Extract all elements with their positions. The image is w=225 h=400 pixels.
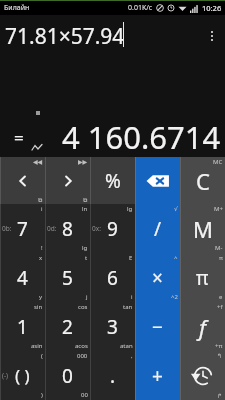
staticText: lg	[82, 244, 88, 252]
staticText: f	[199, 312, 206, 342]
button[interactable]: π	[180, 253, 225, 302]
staticText: atan	[120, 342, 133, 350]
staticText: 4 160.6714	[62, 116, 221, 157]
staticText: ↱	[217, 392, 223, 399]
staticText: /	[154, 216, 162, 242]
staticText: asin	[31, 342, 43, 350]
staticText: M-	[215, 244, 223, 252]
staticText: (-)	[2, 371, 8, 380]
button[interactable]: history	[180, 351, 225, 400]
staticText: M	[193, 214, 213, 244]
button[interactable]: x	[0, 253, 45, 302]
button[interactable]: ,	[90, 351, 135, 400]
staticText: +π	[215, 342, 223, 350]
button[interactable]: +f	[180, 302, 225, 351]
staticText: 4	[17, 265, 28, 291]
button[interactable]: M+	[180, 204, 225, 253]
button[interactable]: %	[90, 157, 135, 204]
staticText: e	[219, 293, 223, 301]
staticText: 000	[77, 352, 88, 360]
staticText: )	[41, 391, 43, 399]
staticText: 2	[62, 314, 73, 340]
staticText: ,	[131, 352, 133, 360]
button[interactable]: cos	[45, 302, 90, 351]
button[interactable]: 000	[45, 351, 90, 400]
staticText: 10:26	[202, 3, 222, 13]
staticText: E	[129, 254, 133, 262]
staticText: tan	[123, 303, 133, 311]
button[interactable]: −	[135, 302, 180, 351]
button[interactable]: 0x:	[90, 204, 135, 253]
staticText: 0b:	[2, 224, 12, 233]
staticText: y	[39, 293, 43, 301]
staticText: M+	[214, 205, 223, 213]
staticText: sin	[34, 303, 43, 311]
button[interactable]: t	[45, 253, 90, 302]
staticText: ◀◀	[33, 158, 43, 165]
staticText: −	[152, 314, 163, 340]
staticText: =	[14, 126, 24, 149]
staticText: C	[196, 166, 210, 196]
staticText: 9	[107, 216, 118, 242]
staticText: ( )	[15, 364, 30, 387]
staticText: ⧉	[38, 197, 43, 203]
staticText: MC	[213, 158, 223, 166]
staticText: 5	[62, 265, 73, 291]
staticText: 8	[62, 216, 73, 242]
button[interactable]: More options	[207, 27, 217, 45]
button[interactable]: left	[0, 157, 45, 204]
button[interactable]: 0b:	[0, 204, 45, 253]
staticText: ^	[174, 254, 178, 262]
button[interactable]: 0d:	[45, 204, 90, 253]
staticText: i	[41, 205, 43, 213]
staticText: ↰	[217, 352, 223, 359]
staticText: π	[219, 254, 223, 262]
button[interactable]: ^	[135, 253, 180, 302]
staticText: ^2	[171, 293, 178, 301]
staticText: Билайн	[4, 3, 30, 13]
staticText: ×	[152, 265, 163, 291]
staticText: 71.81×57.94	[5, 22, 125, 51]
button[interactable]: (-)	[0, 351, 45, 400]
button[interactable]: √	[135, 204, 180, 253]
staticText: +f	[217, 303, 223, 311]
button[interactable]: tan	[90, 302, 135, 351]
button[interactable]: E	[90, 253, 135, 302]
staticText: acos	[75, 342, 88, 350]
button[interactable]: sin	[0, 302, 45, 351]
staticText: .	[110, 363, 116, 389]
staticText: ▶▶	[78, 158, 88, 165]
staticText: (	[41, 352, 43, 360]
staticText: i	[131, 293, 133, 301]
staticText: ⧉	[83, 197, 88, 203]
button[interactable]: del	[135, 157, 180, 204]
staticText: lg	[127, 205, 133, 213]
staticText: !	[41, 244, 43, 252]
staticText: 0d:	[47, 224, 57, 233]
button[interactable]: right	[45, 157, 90, 204]
staticText: 0.01K/c	[128, 3, 153, 13]
staticText: 3	[107, 314, 118, 340]
staticText: 0	[62, 363, 73, 389]
staticText: 0x:	[92, 224, 101, 233]
staticText: ln	[82, 205, 88, 213]
staticText: 00	[81, 391, 88, 399]
staticText: %	[105, 168, 121, 194]
staticText: 6	[107, 265, 118, 291]
staticText: x	[39, 254, 43, 262]
button[interactable]: +	[135, 351, 180, 400]
staticText: j	[86, 293, 88, 301]
staticText: 1	[17, 314, 28, 340]
staticText: √	[174, 205, 178, 212]
staticText: +	[152, 363, 163, 389]
button[interactable]: MC	[180, 157, 225, 204]
staticText: cos	[78, 303, 88, 311]
staticText: t	[85, 254, 88, 262]
staticText: π	[196, 265, 209, 291]
staticText: 7	[17, 216, 28, 242]
